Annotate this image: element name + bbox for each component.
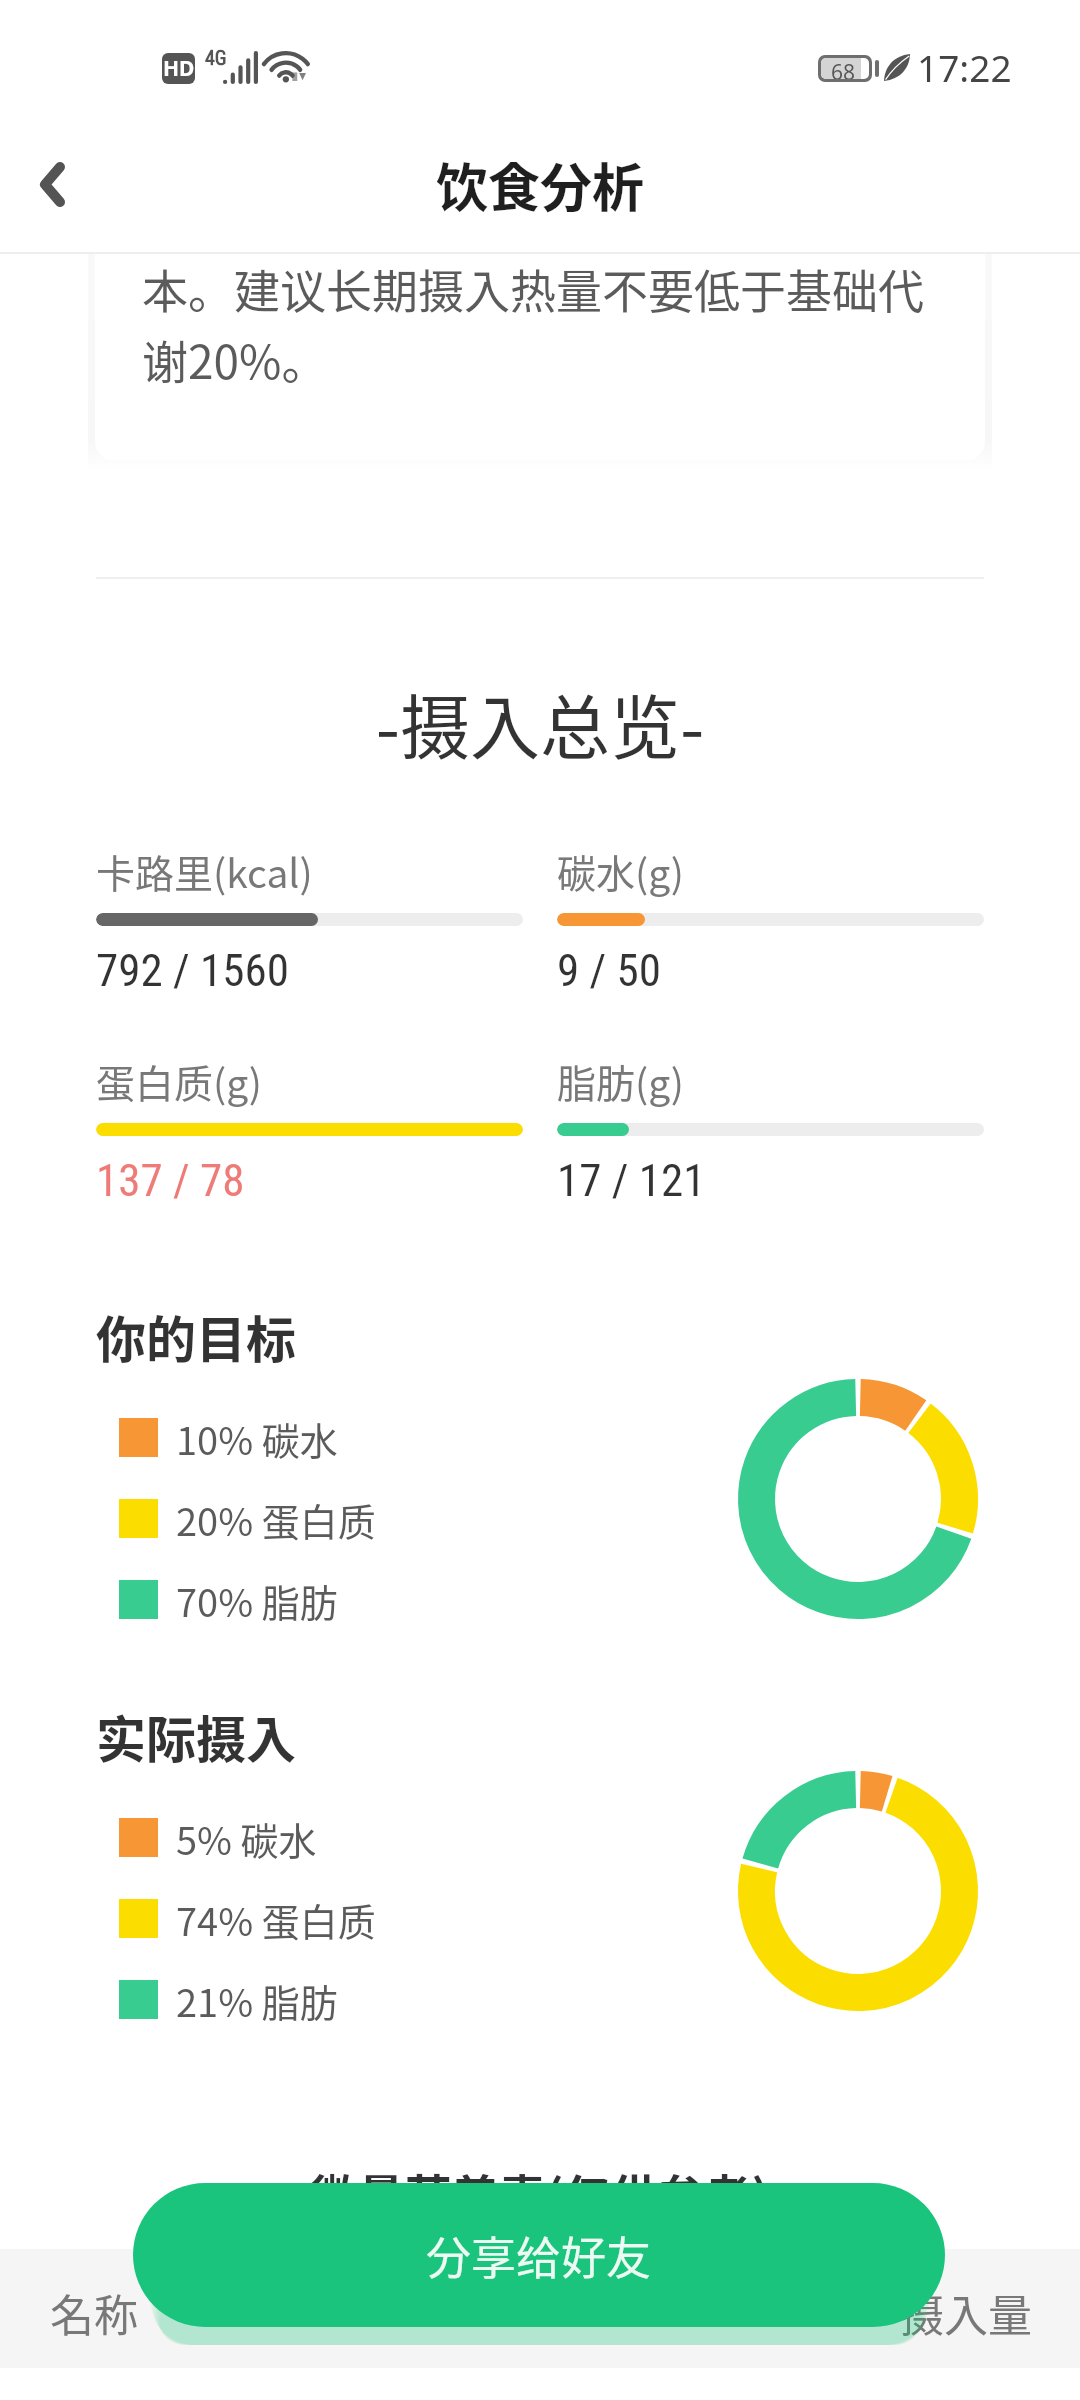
staticText: 17:22 <box>917 42 1012 92</box>
staticText: 4G <box>205 46 227 69</box>
button[interactable]: 70% 脂肪 <box>96 1562 426 1626</box>
staticText: 名称 <box>50 2281 138 2345</box>
staticText: 10% 碳水 <box>176 1411 338 1466</box>
staticText: 卡路里(kcal) <box>96 843 313 899</box>
staticText: 792 / 1560 <box>96 944 289 997</box>
staticText: 137 / 78 <box>96 1154 245 1207</box>
staticText: 饮食分析 <box>0 147 1080 222</box>
staticText: 20% 蛋白质 <box>176 1492 376 1547</box>
button[interactable]: 21% 脂肪 <box>96 1962 426 2026</box>
staticText: -摄入总览- <box>0 673 1080 774</box>
staticText: 17 / 121 <box>557 1154 706 1207</box>
button[interactable]: 10% 碳水 <box>96 1400 426 1464</box>
staticText: 70% 脂肪 <box>176 1573 338 1628</box>
staticText: 摄入量 <box>900 2281 1032 2345</box>
staticText: 碳水(g) <box>557 843 684 899</box>
staticText: 21% 脂肪 <box>176 1973 338 2028</box>
staticText: HD <box>163 54 195 83</box>
staticText: 68 <box>831 58 856 79</box>
staticText: 9 / 50 <box>557 944 661 997</box>
button[interactable]: Back <box>0 130 110 240</box>
button[interactable]: 分享给好友 <box>133 2183 945 2327</box>
staticText: 本。建议长期摄入热量不要低于基础代 谢20%。 <box>142 255 924 392</box>
staticText: 你的目标 <box>96 1300 296 1372</box>
staticText: 微量营养素(仅供参考) <box>0 2159 1080 2227</box>
staticText: 实际摄入 <box>96 1700 296 1772</box>
button[interactable]: 74% 蛋白质 <box>96 1881 426 1945</box>
staticText: 5% 碳水 <box>176 1811 317 1866</box>
button[interactable]: 20% 蛋白质 <box>96 1481 426 1545</box>
staticText: 脂肪(g) <box>557 1053 684 1109</box>
staticText: 蛋白质(g) <box>96 1053 262 1109</box>
button[interactable]: 5% 碳水 <box>96 1800 426 1864</box>
staticText: 74% 蛋白质 <box>176 1892 376 1947</box>
staticText: 分享给好友 <box>426 2223 652 2288</box>
